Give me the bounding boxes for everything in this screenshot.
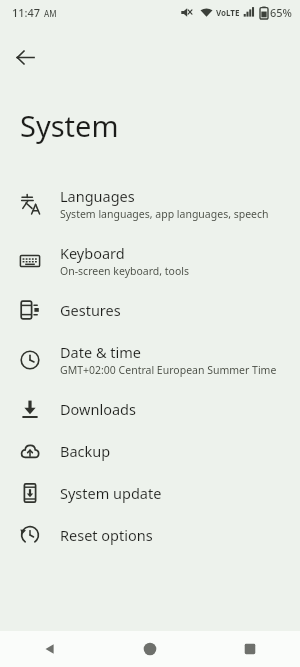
staticText: System update: [60, 483, 162, 503]
button[interactable]: Back: [6, 38, 44, 76]
button[interactable]: Back: [0, 631, 100, 667]
staticText: 11:47: [12, 5, 41, 20]
button[interactable]: Languages: [0, 175, 300, 232]
staticText: Keyboard: [60, 243, 125, 263]
staticText: Downloads: [60, 399, 136, 419]
staticText: Languages: [60, 186, 135, 206]
button[interactable]: Reset options: [0, 514, 300, 556]
staticText: AM: [44, 8, 57, 19]
button[interactable]: Recent apps: [200, 631, 300, 667]
button[interactable]: Backup: [0, 430, 300, 472]
staticText: System: [20, 106, 119, 145]
staticText: System languages, app languages, speech: [60, 207, 269, 221]
staticText: Gestures: [60, 300, 121, 320]
button[interactable]: Gestures: [0, 289, 300, 331]
button[interactable]: Keyboard: [0, 232, 300, 289]
button[interactable]: Date & time: [0, 331, 300, 388]
button[interactable]: Downloads: [0, 388, 300, 430]
button[interactable]: Home: [100, 631, 200, 667]
staticText: Reset options: [60, 525, 153, 545]
staticText: Backup: [60, 441, 111, 461]
staticText: Date & time: [60, 342, 141, 362]
staticText: GMT+02:00 Central European Summer Time: [60, 363, 277, 377]
staticText: 65%: [270, 5, 292, 20]
staticText: VoLTE: [216, 7, 240, 18]
staticText: On-screen keyboard, tools: [60, 264, 190, 278]
button[interactable]: System update: [0, 472, 300, 514]
